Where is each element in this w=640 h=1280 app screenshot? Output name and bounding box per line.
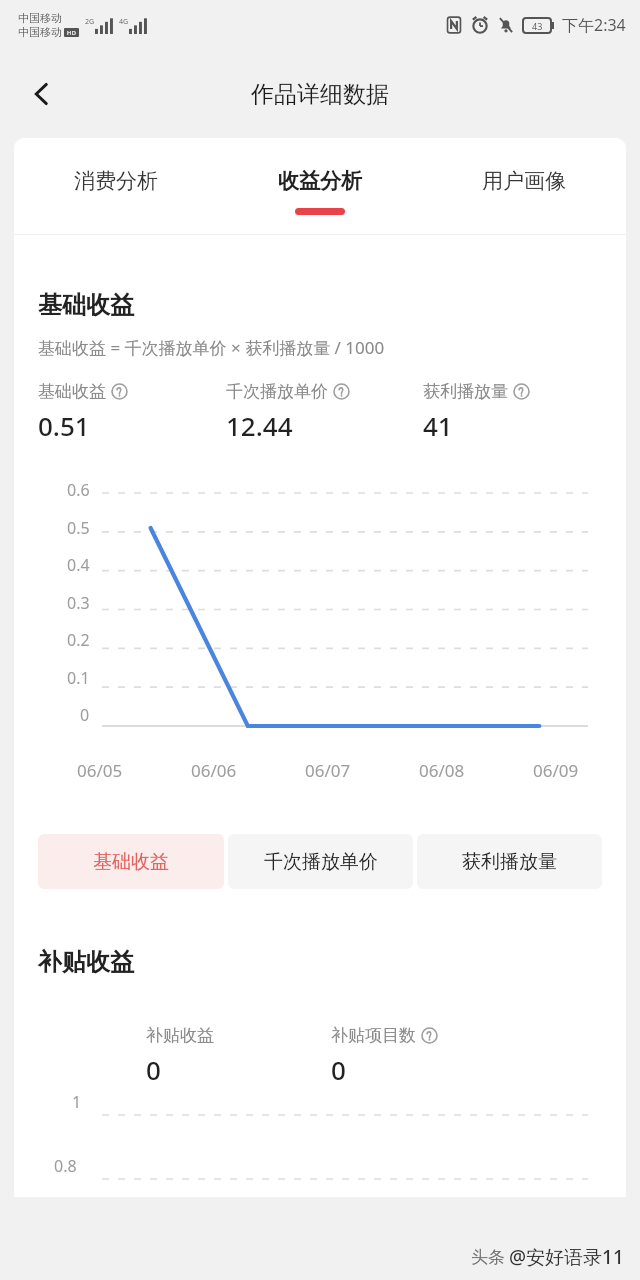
button[interactable]: 消费分析	[14, 138, 218, 233]
staticText: 收益分析	[278, 168, 362, 194]
staticText: 0.5	[67, 517, 90, 539]
staticText: 06/07	[305, 759, 351, 782]
staticText: 06/08	[419, 759, 465, 782]
staticText: 43	[532, 20, 543, 32]
staticText: 12.44	[226, 408, 293, 443]
staticText: 用户画像	[482, 168, 566, 194]
staticText: 中国移动	[18, 25, 62, 39]
staticText: 0	[80, 704, 90, 726]
staticText: 补贴收益	[146, 1025, 214, 1046]
staticText: 下午2:34	[562, 14, 626, 36]
staticText: 0.2	[67, 629, 90, 651]
staticText: 2G	[85, 17, 95, 27]
staticText: 0.1	[67, 667, 90, 689]
staticText: 0.51	[38, 408, 90, 443]
button[interactable]: 千次播放单价	[228, 834, 413, 889]
staticText: 基础收益	[93, 850, 169, 874]
staticText: 0	[331, 1052, 346, 1087]
staticText: 获利播放量	[423, 381, 508, 402]
staticText: @安好语录11	[509, 1244, 624, 1270]
button[interactable]: 基础收益	[38, 834, 224, 889]
staticText: 0.4	[67, 554, 90, 576]
staticText: 消费分析	[74, 168, 158, 194]
staticText: 0	[146, 1052, 161, 1087]
staticText: HD	[67, 29, 76, 37]
staticText: 获利播放量	[462, 850, 557, 874]
staticText: 0.6	[67, 479, 90, 501]
staticText: 补贴项目数	[331, 1025, 416, 1046]
staticText: 06/09	[533, 759, 579, 782]
staticText: 中国移动	[18, 11, 62, 25]
button[interactable]: 用户画像	[422, 138, 626, 233]
staticText: 作品详细数据	[251, 80, 389, 109]
staticText: 0.3	[67, 592, 90, 614]
staticText: 基础收益	[38, 290, 134, 320]
staticText: 06/06	[191, 759, 237, 782]
staticText: 基础收益 = 千次播放单价 × 获利播放量 / 1000	[38, 336, 385, 359]
button[interactable]: 获利播放量	[417, 834, 602, 889]
staticText: 4G	[119, 17, 129, 27]
staticText: 头条	[471, 1247, 505, 1268]
button[interactable]: 收益分析	[218, 138, 422, 233]
staticText: 基础收益	[38, 381, 106, 402]
staticText: 41	[423, 408, 453, 443]
staticText: 补贴收益	[38, 947, 134, 977]
button[interactable]: Back	[14, 66, 70, 122]
staticText: 千次播放单价	[226, 381, 328, 402]
staticText: 千次播放单价	[264, 850, 378, 874]
staticText: 1	[72, 1091, 82, 1113]
staticText: 0.8	[54, 1155, 77, 1177]
staticText: 06/05	[77, 759, 123, 782]
